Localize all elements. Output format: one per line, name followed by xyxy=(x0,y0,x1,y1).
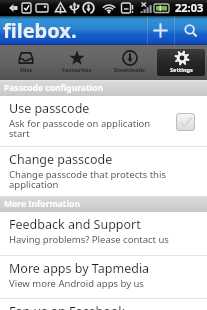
button[interactable]: Change passcode xyxy=(0,147,207,196)
button[interactable]: Settings xyxy=(155,45,207,80)
staticText: View more Android apps by us xyxy=(9,277,144,290)
staticText: Passcode configuration xyxy=(4,82,103,94)
staticText: Fan us on Facebook xyxy=(9,303,126,310)
staticText: More apps by Tapmedia xyxy=(9,260,150,277)
staticText: 22:03 xyxy=(175,0,204,15)
button[interactable]: Add xyxy=(147,16,174,45)
button[interactable]: Fan us on Facebook xyxy=(0,299,207,310)
staticText: Settings xyxy=(170,66,193,74)
button[interactable]: Feedback and Support xyxy=(0,212,207,255)
button[interactable]: Use passcode xyxy=(0,96,207,146)
staticText: Ask for passcode on application start xyxy=(9,117,171,140)
staticText: Feedback and Support xyxy=(9,216,141,233)
staticText: More Information xyxy=(4,198,80,210)
button[interactable]: More apps by Tapmedia xyxy=(0,256,207,298)
staticText: filebox. xyxy=(3,17,77,44)
button[interactable]: Downloads xyxy=(103,45,155,80)
staticText: Files xyxy=(20,66,33,74)
staticText: Change passcode that protects this appli… xyxy=(9,168,199,191)
staticText: Use passcode xyxy=(9,100,90,117)
button[interactable]: Search xyxy=(174,16,207,45)
staticText: Having problems? Please contact us xyxy=(9,233,169,246)
staticText: Change passcode xyxy=(9,151,113,168)
staticText: Downloads xyxy=(114,66,145,74)
button[interactable]: Files xyxy=(0,45,51,80)
staticText: Favourites xyxy=(62,66,92,74)
button[interactable]: Favourites xyxy=(51,45,103,80)
